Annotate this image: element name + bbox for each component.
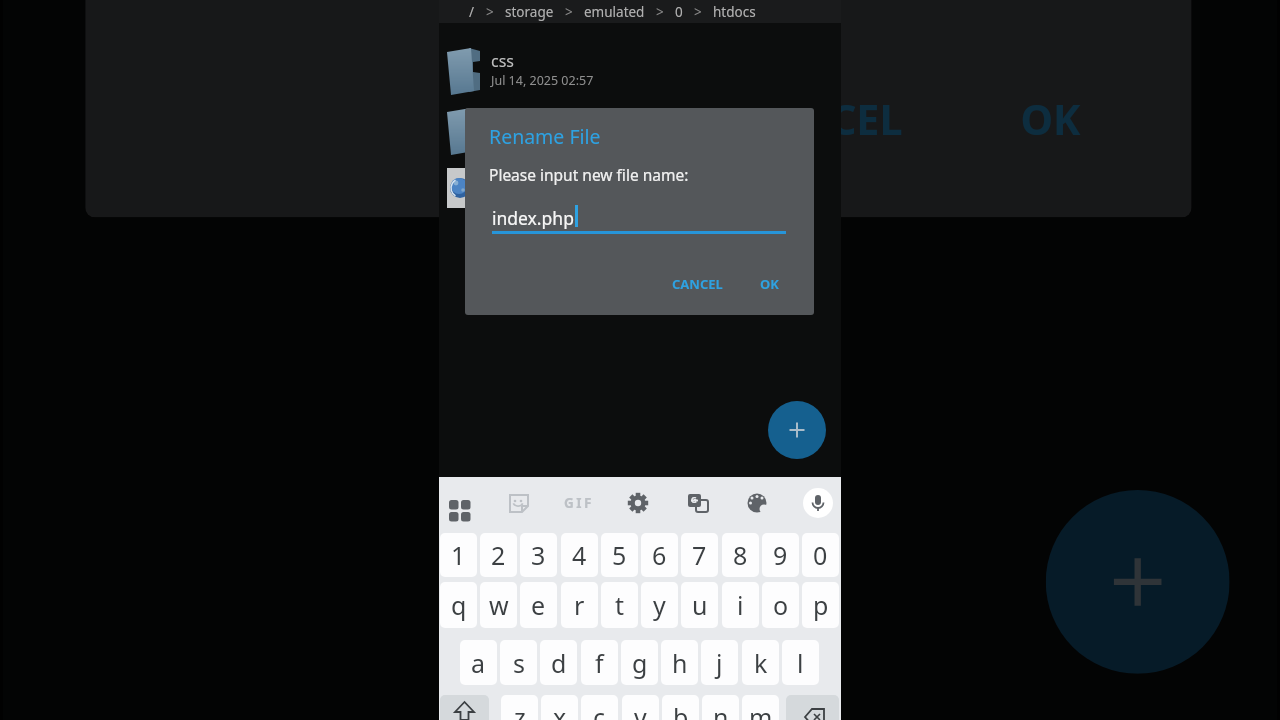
button[interactable] [439,36,841,98]
button[interactable]: g [621,640,658,685]
button[interactable] [803,488,833,518]
staticText: Jul 14, 2025 02:57 [491,72,594,89]
button[interactable]: CANCEL [697,68,944,170]
button[interactable]: c [581,695,618,720]
staticText: 0 [813,538,828,572]
button[interactable]: w [480,582,517,628]
button[interactable]: 6 [641,533,678,577]
button[interactable] [501,485,537,521]
staticText: OK [1020,90,1081,148]
staticText: 5 [612,538,627,572]
button[interactable]: u [681,582,718,628]
button[interactable]: 3 [520,533,557,577]
staticText: a [471,646,486,680]
button[interactable]: p [802,582,839,628]
button[interactable] [1046,490,1230,674]
button[interactable]: 2 [480,533,517,577]
button[interactable]: 9 [762,533,799,577]
button[interactable]: 0 [675,3,683,21]
button[interactable]: > [486,3,494,21]
staticText: 4 [572,538,587,572]
staticText: 9 [773,538,788,572]
button[interactable]: e [520,582,557,628]
button[interactable]: GIF [561,485,597,521]
button[interactable]: OK [745,268,793,300]
button[interactable]: 1 [440,533,477,577]
button[interactable]: / [469,3,475,21]
button[interactable] [439,98,841,159]
staticText: n [713,700,729,720]
staticText: l [797,646,804,680]
button[interactable] [440,695,489,720]
staticText: p [813,588,829,622]
staticText: u [692,588,708,622]
button[interactable] [786,695,839,720]
staticText: index.php [492,206,574,230]
button[interactable]: 7 [681,533,718,577]
staticText: o [773,588,789,622]
button[interactable]: h [661,640,698,685]
button[interactable]: m [742,695,779,720]
staticText: g [632,646,648,680]
button[interactable]: > [656,3,664,21]
button[interactable]: 0 [802,533,839,577]
button[interactable]: o [762,582,799,628]
button[interactable]: htdocs [713,3,756,21]
staticText: h [672,646,688,680]
button[interactable] [442,485,478,521]
button[interactable]: x [541,695,578,720]
button[interactable]: y [641,582,678,628]
button[interactable]: d [540,640,577,685]
staticText: 1 [451,538,466,572]
button[interactable] [439,159,841,220]
button[interactable]: storage [505,3,554,21]
staticText: CANCEL [672,275,723,293]
button[interactable]: v [622,695,659,720]
staticText: q [451,588,467,622]
button[interactable]: k [742,640,779,685]
staticText: 3 [531,538,546,572]
button[interactable]: t [601,582,638,628]
button[interactable]: > [694,3,702,21]
staticText: z [514,700,526,720]
button[interactable]: G [680,485,716,521]
staticText: f [595,646,604,680]
staticText: v [634,700,647,720]
staticText: s [513,646,525,680]
staticText: Rename File [489,123,601,150]
button[interactable]: 8 [722,533,759,577]
button[interactable]: l [782,640,819,685]
button[interactable]: OK [973,68,1125,170]
button[interactable]: j [701,640,738,685]
button[interactable]: r [561,582,598,628]
button[interactable]: CANCEL [658,268,736,300]
button[interactable]: 5 [601,533,638,577]
button[interactable]: q [440,582,477,628]
button[interactable]: z [501,695,538,720]
button[interactable]: emulated [584,3,645,21]
staticText: x [553,700,567,720]
button[interactable]: i [722,582,759,628]
staticText: t [615,588,625,622]
staticText: 6 [652,538,667,572]
button[interactable]: 4 [561,533,598,577]
staticText: d [551,646,567,680]
button[interactable] [768,401,826,459]
staticText: i [737,588,744,622]
staticText: y [653,588,666,622]
button[interactable]: b [662,695,699,720]
button[interactable] [739,485,775,521]
staticText: b [673,700,689,720]
staticText: 8 [733,538,748,572]
staticText: m [749,700,773,720]
button[interactable]: n [702,695,739,720]
staticText: css [491,50,515,72]
button[interactable]: > [565,3,573,21]
button[interactable]: a [460,640,497,685]
button[interactable]: f [581,640,618,685]
button[interactable]: s [500,640,537,685]
button[interactable] [620,485,656,521]
staticText: k [754,646,768,680]
staticText: OK [760,275,779,293]
staticText: Please input new file name: [489,164,689,185]
